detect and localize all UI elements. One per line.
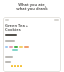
staticText: Green Tea + Cookies	[5, 23, 29, 32]
button[interactable]: Green Tea + Cookies	[3, 17, 61, 72]
staticText: What you ate, what you drank	[0, 2, 64, 11]
